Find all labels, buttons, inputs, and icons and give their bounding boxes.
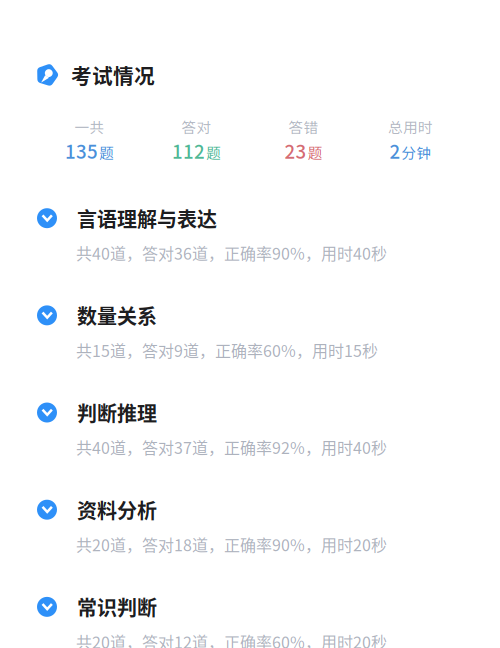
- staticText: 常识判断: [77, 592, 157, 621]
- staticText: 23: [284, 137, 306, 164]
- button[interactable]: 判断推理: [0, 401, 500, 459]
- staticText: 题: [206, 142, 221, 163]
- staticText: 题: [307, 142, 322, 163]
- staticText: 总用时: [388, 116, 433, 137]
- staticText: 共40道，答对36道，正确率90%，用时40秒: [76, 241, 387, 264]
- staticText: 112: [172, 137, 205, 164]
- button[interactable]: 常识判断: [0, 596, 500, 648]
- button[interactable]: 言语理解与表达: [0, 207, 500, 264]
- staticText: 考试情况: [71, 60, 155, 90]
- staticText: 共20道，答对12道，正确率60%，用时20秒: [76, 630, 387, 648]
- staticText: 共20道，答对18道，正确率90%，用时20秒: [76, 533, 387, 556]
- staticText: 资料分析: [77, 495, 157, 524]
- staticText: 分钟: [401, 142, 431, 163]
- staticText: 答对: [181, 116, 211, 137]
- staticText: 数量关系: [77, 301, 157, 330]
- staticText: 答错: [288, 116, 318, 137]
- staticText: 判断推理: [77, 398, 157, 427]
- staticText: 一共: [74, 116, 104, 137]
- button[interactable]: 资料分析: [0, 499, 500, 556]
- staticText: 题: [99, 142, 114, 163]
- staticText: 共40道，答对37道，正确率92%，用时40秒: [76, 435, 387, 459]
- staticText: 共15道，答对9道，正确率60%，用时15秒: [76, 338, 378, 362]
- staticText: 135: [65, 137, 98, 164]
- staticText: 言语理解与表达: [77, 204, 217, 233]
- staticText: 2: [389, 137, 400, 164]
- button[interactable]: 数量关系: [0, 304, 500, 362]
